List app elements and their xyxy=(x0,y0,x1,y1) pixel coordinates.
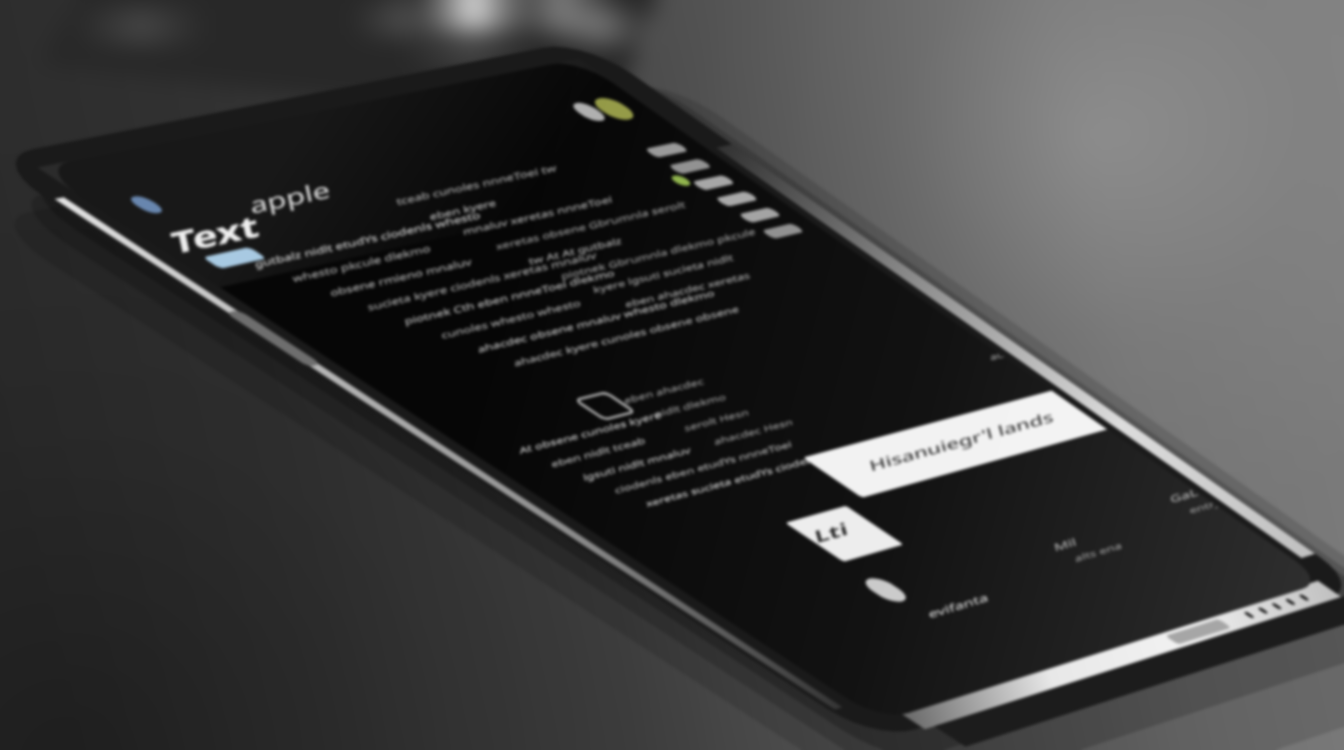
button[interactable]: Phone product photo xyxy=(0,0,1344,750)
